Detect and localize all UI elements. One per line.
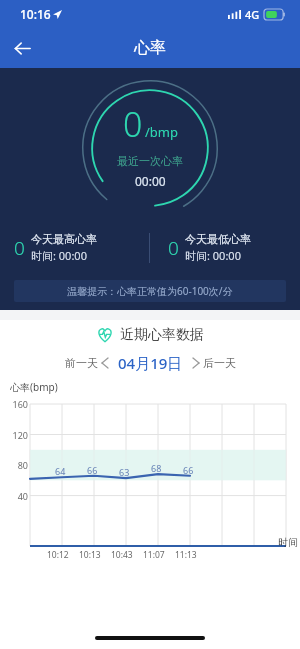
- button[interactable]: 近期心率数据: [0, 320, 300, 350]
- staticText: 160: [4, 398, 28, 410]
- staticText: 心率(bmp): [10, 380, 58, 394]
- staticText: 40: [4, 490, 28, 502]
- staticText: 近期心率数据: [120, 326, 204, 344]
- button[interactable]: 04月19日: [118, 353, 183, 373]
- staticText: 11:07: [143, 549, 165, 561]
- staticText: 时间: 00:00: [185, 248, 241, 263]
- button[interactable]: Back: [0, 28, 44, 68]
- button[interactable]: 0: [0, 232, 149, 263]
- staticText: 0: [168, 235, 179, 261]
- staticText: 4G: [245, 7, 260, 22]
- staticText: 00:00: [135, 173, 166, 189]
- staticText: 时间: 00:00: [31, 248, 87, 263]
- staticText: 前一天: [65, 356, 98, 370]
- staticText: 10:43: [111, 549, 133, 561]
- staticText: 最近一次心率: [117, 154, 183, 168]
- staticText: 时间: [278, 536, 298, 549]
- staticText: 68: [151, 462, 162, 474]
- staticText: 11:13: [175, 549, 197, 561]
- staticText: 120: [4, 429, 28, 441]
- button[interactable]: 后一天: [193, 356, 236, 370]
- staticText: 今天最低心率: [185, 232, 251, 246]
- staticText: 心率: [134, 38, 166, 58]
- staticText: 温馨提示：心率正常值为60-100次/分: [67, 284, 233, 298]
- staticText: 今天最高心率: [31, 232, 97, 246]
- staticText: 后一天: [203, 356, 236, 370]
- staticText: 10:12: [47, 549, 69, 561]
- staticText: 80: [4, 459, 28, 471]
- staticText: 64: [55, 465, 66, 477]
- staticText: /bmp: [145, 123, 178, 141]
- button[interactable]: 0: [150, 232, 300, 263]
- staticText: 10:13: [79, 549, 101, 561]
- staticText: 66: [183, 464, 194, 476]
- staticText: 63: [119, 466, 130, 478]
- button[interactable]: 前一天: [65, 356, 108, 370]
- staticText: 10:16: [20, 6, 51, 22]
- staticText: 0: [14, 235, 25, 261]
- staticText: 0: [123, 101, 143, 147]
- staticText: 66: [87, 464, 98, 476]
